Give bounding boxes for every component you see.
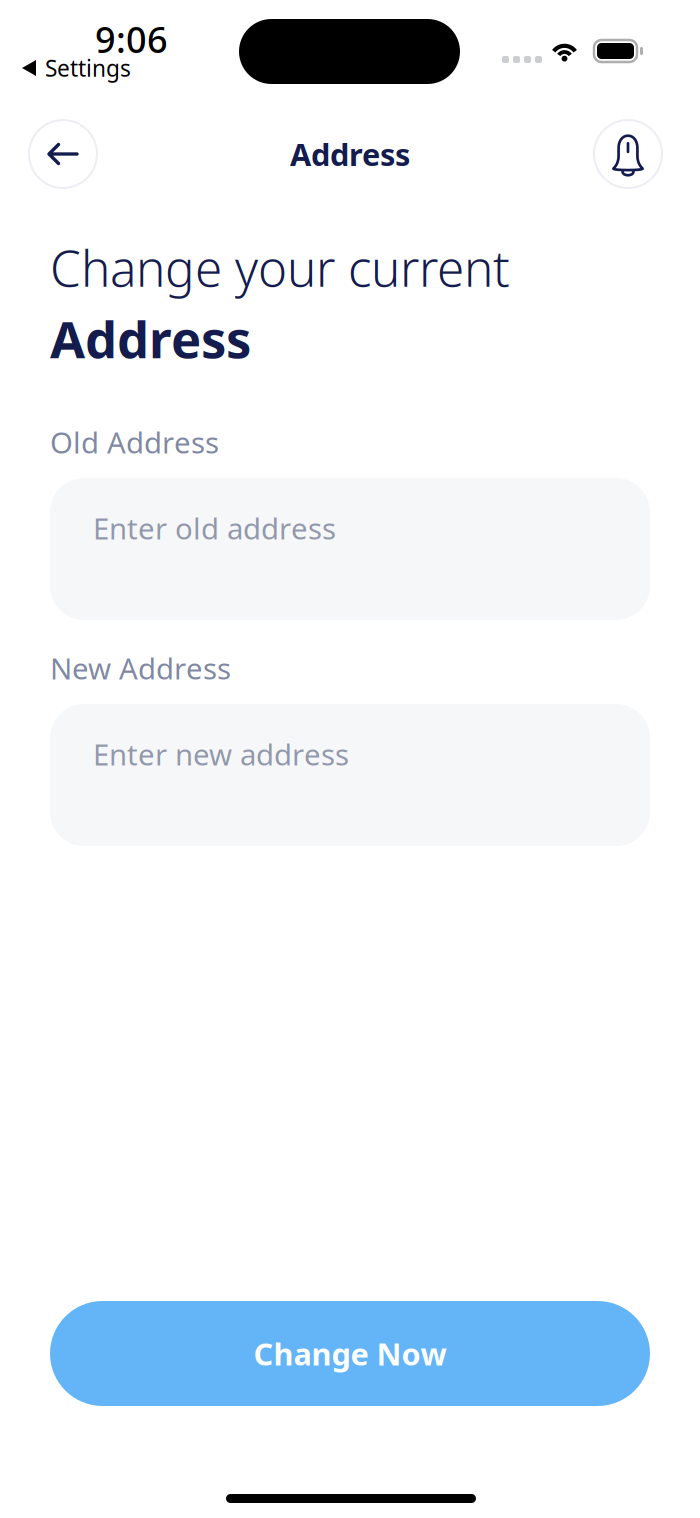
button[interactable]: Change Now	[50, 1301, 650, 1406]
staticText: Change Now	[253, 1333, 446, 1374]
staticText: Address	[290, 134, 410, 174]
button[interactable]: Notifications	[593, 119, 663, 189]
button[interactable]: Enter old address	[50, 478, 650, 620]
staticText: Enter new address	[93, 734, 349, 773]
staticText: 9:06	[95, 15, 168, 63]
staticText: Change your current	[50, 235, 510, 300]
staticText: Address	[50, 305, 251, 372]
staticText: Old Address	[50, 422, 219, 461]
staticText: Settings	[45, 53, 131, 83]
button[interactable]: Back	[28, 119, 98, 189]
staticText: New Address	[50, 648, 231, 687]
staticText: Enter old address	[93, 508, 336, 547]
button[interactable]: Enter new address	[50, 704, 650, 846]
